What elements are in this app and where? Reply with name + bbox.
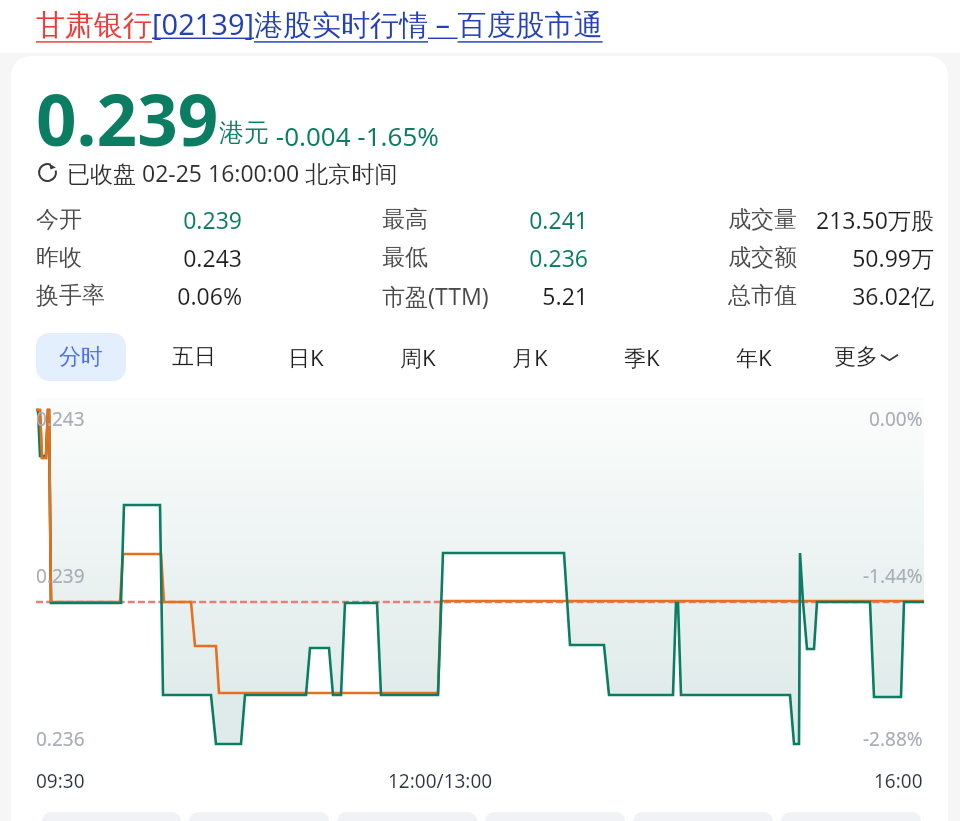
staticText: -1.44% <box>863 563 923 589</box>
staticText: -2.88% <box>863 726 923 752</box>
button[interactable]: 五日 <box>166 333 222 381</box>
staticText: 16:00 <box>874 768 923 794</box>
other: Refresh <box>37 162 58 183</box>
button[interactable]: 最低 <box>382 238 588 276</box>
staticText: 港元 <box>219 117 269 148</box>
staticText: 最高 <box>382 205 428 234</box>
staticText: 月K <box>512 342 548 372</box>
staticText: 成交额 <box>728 243 797 272</box>
staticText: 季K <box>624 342 660 372</box>
staticText: 0.06% <box>105 280 242 311</box>
button[interactable]: 甘肃银行[02139]港股实时行情 – 百度股市通 <box>0 0 960 56</box>
staticText: 今开 <box>36 205 82 234</box>
button[interactable]: 最高 <box>382 200 588 238</box>
staticText: 最低 <box>382 243 428 272</box>
staticText: 分时 <box>59 343 103 371</box>
staticText: 0.239 <box>36 70 219 167</box>
button[interactable]: 月K <box>506 332 554 382</box>
button[interactable]: 市盈(TTM) <box>382 276 588 314</box>
staticText: 年K <box>736 342 772 372</box>
button[interactable]: 年K <box>730 332 778 382</box>
staticText: 0.243 <box>36 406 85 432</box>
button[interactable]: 成交额 <box>728 238 934 276</box>
button[interactable]: 分时 <box>36 333 126 381</box>
button[interactable]: 今开 <box>36 200 242 238</box>
button[interactable]: 昨收 <box>36 238 242 276</box>
staticText: 36.02亿 <box>797 280 934 311</box>
staticText: 213.50万股 <box>797 204 934 235</box>
staticText: 周K <box>400 342 436 372</box>
staticText: 日K <box>288 342 324 372</box>
staticText: 更多 <box>834 343 878 371</box>
staticText: 已收盘 02-25 16:00:00 北京时间 <box>67 157 398 188</box>
staticText: 昨收 <box>36 243 82 272</box>
button[interactable]: 成交量 <box>728 200 934 238</box>
staticText: 市盈(TTM) <box>382 280 489 311</box>
staticText: 0.236 <box>428 242 588 273</box>
staticText: 0.241 <box>428 204 588 235</box>
staticText: 0.236 <box>36 726 85 752</box>
staticText: -0.004 -1.65% <box>269 118 439 153</box>
button[interactable]: 总市值 <box>728 276 934 314</box>
staticText: 09:30 <box>36 768 85 794</box>
staticText: 0.243 <box>82 242 242 273</box>
staticText: 0.00% <box>869 406 923 432</box>
staticText: 甘肃银行[02139]港股实时行情 – 百度股市通 <box>36 4 603 44</box>
staticText: 50.99万 <box>797 242 934 273</box>
staticText: 12:00/13:00 <box>388 768 493 794</box>
button[interactable]: 周K <box>394 332 442 382</box>
staticText: 0.239 <box>36 563 85 589</box>
staticText: 五日 <box>172 343 216 371</box>
button[interactable]: 换手率 <box>36 276 242 314</box>
staticText: 换手率 <box>36 281 105 310</box>
staticText: 成交量 <box>728 205 797 234</box>
button[interactable]: 更多 <box>828 333 904 381</box>
staticText: 5.21 <box>489 280 588 311</box>
button[interactable]: 季K <box>618 332 666 382</box>
staticText: 0.239 <box>82 204 242 235</box>
button[interactable]: 日K <box>282 332 330 382</box>
staticText: 总市值 <box>728 281 797 310</box>
